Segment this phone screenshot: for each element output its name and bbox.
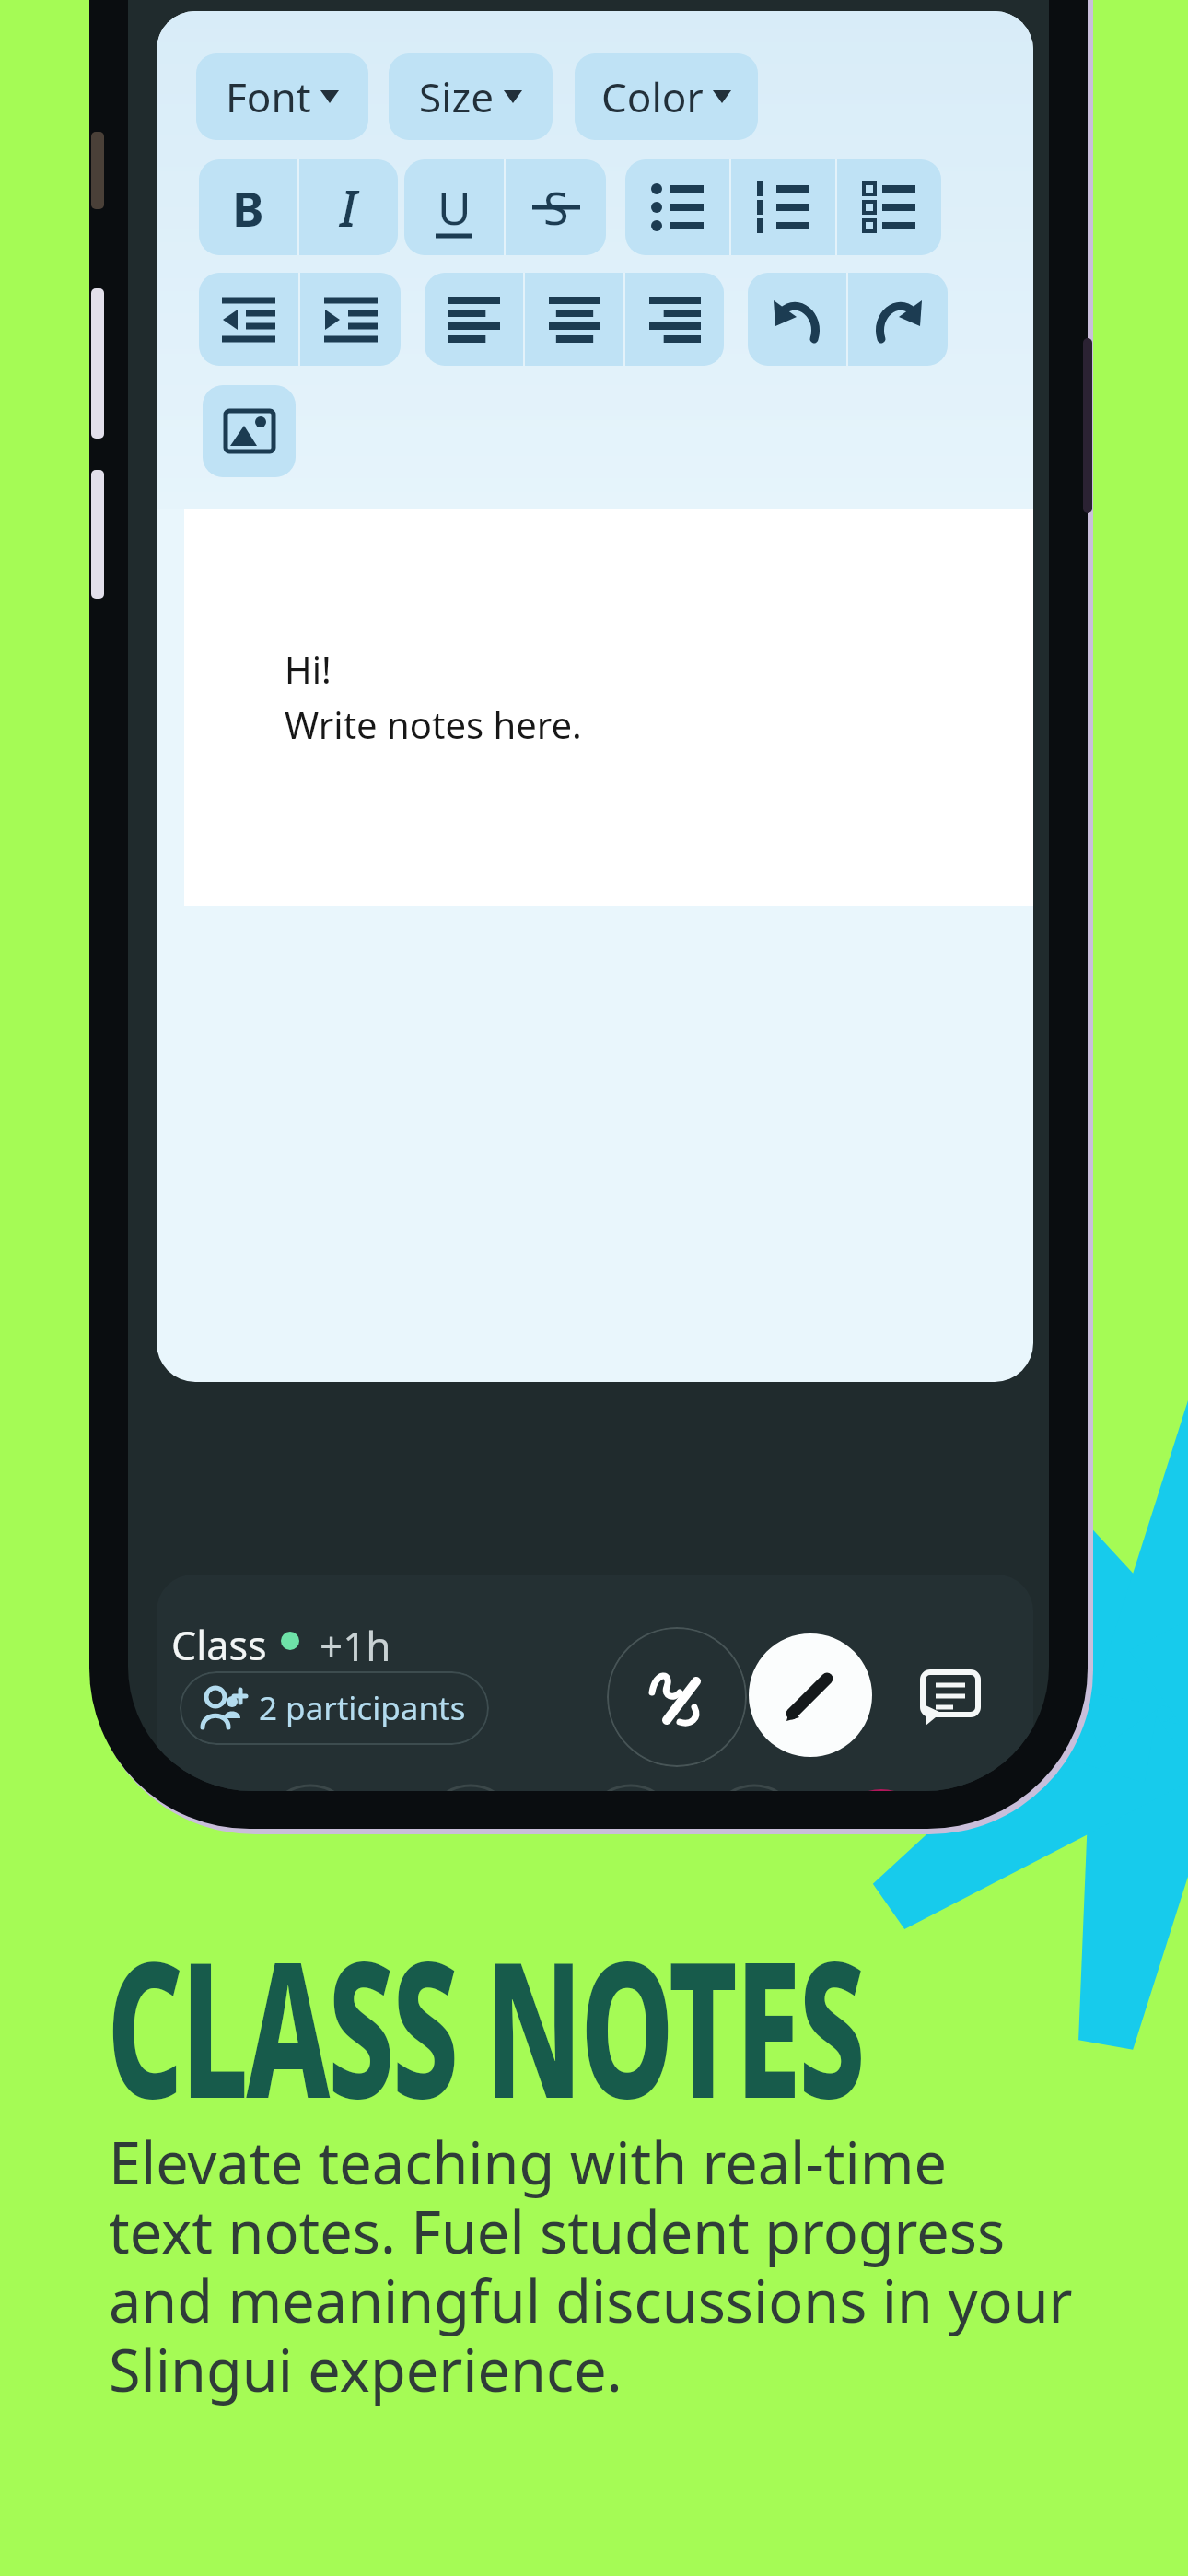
button[interactable]	[848, 273, 948, 366]
staticText: B	[232, 175, 264, 240]
button[interactable]: B	[199, 159, 297, 255]
staticText: U	[437, 176, 472, 239]
button[interactable]: S	[506, 159, 606, 255]
staticText: CLASS NOTES	[107, 1898, 864, 2152]
button[interactable]	[748, 273, 846, 366]
staticText: Elevate teaching with real-time text not…	[109, 2123, 1073, 2408]
button[interactable]	[425, 273, 523, 366]
button[interactable]	[203, 385, 296, 477]
button[interactable]: 2 participants	[180, 1671, 489, 1745]
staticText: S	[543, 176, 569, 239]
staticText: Size	[419, 69, 495, 124]
staticText: I	[340, 173, 357, 241]
button[interactable]: U	[404, 159, 504, 255]
staticText: Color	[601, 69, 704, 124]
button[interactable]: Size	[389, 53, 553, 140]
button[interactable]	[525, 273, 623, 366]
button[interactable]	[607, 1627, 747, 1767]
button[interactable]: I	[299, 159, 398, 255]
staticText: Hi!	[285, 644, 332, 694]
staticText: Class	[171, 1618, 267, 1672]
button[interactable]	[923, 1672, 978, 1726]
button[interactable]	[625, 159, 729, 255]
staticText: 2 participants	[259, 1686, 466, 1730]
staticText: Write notes here.	[285, 699, 582, 749]
button[interactable]: Font	[196, 53, 368, 140]
button[interactable]	[837, 159, 941, 255]
button[interactable]	[199, 273, 298, 366]
staticText: +1h	[320, 1618, 391, 1673]
button[interactable]: Color	[575, 53, 758, 140]
button[interactable]	[625, 273, 724, 366]
button[interactable]	[300, 273, 401, 366]
staticText: Font	[226, 69, 311, 124]
button[interactable]	[749, 1633, 872, 1757]
button[interactable]	[731, 159, 835, 255]
